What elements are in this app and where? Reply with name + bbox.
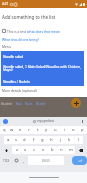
staticText: m	[69, 147, 73, 153]
button[interactable]: i	[60, 126, 69, 134]
button[interactable]: c	[30, 146, 39, 154]
staticText: c	[33, 147, 36, 153]
button[interactable]: b	[48, 146, 57, 154]
button[interactable]: x	[21, 146, 30, 154]
button[interactable]: Noodles / Nudeln	[1, 76, 84, 86]
button[interactable]: n	[57, 146, 66, 154]
button[interactable]: p	[78, 126, 87, 134]
staticText: .	[67, 158, 69, 164]
staticText: e	[19, 127, 22, 133]
button[interactable]: k	[65, 136, 74, 144]
button[interactable]: ?123	[0, 156, 12, 165]
button[interactable]: Nuts	[25, 101, 33, 105]
button[interactable]: ,	[20, 156, 28, 165]
button[interactable]: Nudeln	[1, 101, 13, 105]
staticText: x	[24, 147, 27, 153]
button[interactable]: m	[66, 146, 75, 154]
button[interactable]: What should one bring?	[2, 37, 39, 41]
staticText: Noodles / Nudeln	[3, 79, 31, 83]
staticText: a	[7, 137, 10, 143]
staticText: z	[16, 147, 18, 153]
staticText: w	[10, 127, 14, 133]
staticText: i	[64, 127, 66, 133]
button[interactable]: j	[56, 136, 65, 144]
button[interactable]: This is a test	[2, 29, 60, 33]
button[interactable]: g	[38, 136, 47, 144]
staticText: Add something to the list	[2, 14, 56, 20]
button[interactable]: mytypedtext	[33, 119, 55, 123]
button[interactable]: .	[64, 156, 72, 165]
button[interactable]: y	[42, 126, 51, 134]
button[interactable]: Emoji	[12, 156, 20, 165]
button[interactable]: d	[20, 136, 29, 144]
staticText: 4:21	[2, 2, 9, 6]
button[interactable]: z	[12, 146, 21, 154]
staticText: EN-US	[42, 159, 50, 163]
staticText: l	[78, 137, 80, 143]
button[interactable]: Noodle salad	[1, 51, 84, 60]
button[interactable]: q	[0, 126, 8, 134]
staticText: Noodle salad, 1 Main Salad (Noodles with…	[3, 64, 82, 72]
staticText: This is a test	[7, 29, 27, 33]
staticText: k	[68, 137, 71, 143]
button[interactable]: Add item	[71, 98, 81, 108]
button[interactable]: w	[8, 126, 16, 134]
button[interactable]: More options	[81, 120, 84, 123]
staticText: More details (optional)	[2, 88, 37, 92]
staticText: v	[42, 147, 45, 153]
button[interactable]: t	[33, 126, 42, 134]
staticText: q	[3, 127, 6, 133]
staticText: p	[81, 127, 84, 133]
staticText: n	[60, 147, 63, 153]
staticText: j	[60, 137, 62, 143]
button[interactable]: Space	[28, 156, 64, 165]
button[interactable]: s	[12, 136, 20, 144]
staticText: Noodle salad	[3, 54, 24, 58]
button[interactable]: v	[39, 146, 48, 154]
staticText: what does that mean	[27, 29, 60, 33]
staticText: s	[15, 137, 18, 143]
button[interactable]: r	[24, 126, 33, 134]
staticText: y	[45, 127, 48, 133]
staticText: Menu	[2, 44, 11, 48]
button[interactable]: l	[74, 136, 83, 144]
button[interactable]: Nudel	[36, 101, 46, 105]
staticText: g	[41, 137, 44, 143]
button[interactable]: Noodle salad, 1 Main Salad (Noodles with…	[1, 60, 84, 76]
button[interactable]: o	[69, 126, 78, 134]
button[interactable]: Enter	[72, 156, 87, 165]
staticText: ?123	[3, 159, 10, 163]
button[interactable]: Nut	[16, 101, 22, 105]
staticText: o	[72, 127, 75, 133]
staticText: f	[33, 137, 35, 143]
staticText: d	[23, 137, 26, 143]
staticText: r	[28, 127, 30, 133]
button[interactable]: a	[4, 136, 12, 144]
button[interactable]: Shift	[0, 146, 12, 154]
staticText: h	[50, 137, 53, 143]
button[interactable]: h	[47, 136, 56, 144]
button[interactable]: e	[16, 126, 24, 134]
button[interactable]: f	[29, 136, 38, 144]
staticText: u	[54, 127, 57, 133]
staticText: ,	[23, 158, 25, 164]
staticText: mytypedtext	[37, 119, 55, 123]
button[interactable]: u	[51, 126, 60, 134]
button[interactable]: Google search	[3, 119, 8, 124]
staticText: b	[51, 147, 54, 153]
staticText: t	[37, 127, 39, 133]
button[interactable]: Backspace	[75, 146, 87, 154]
